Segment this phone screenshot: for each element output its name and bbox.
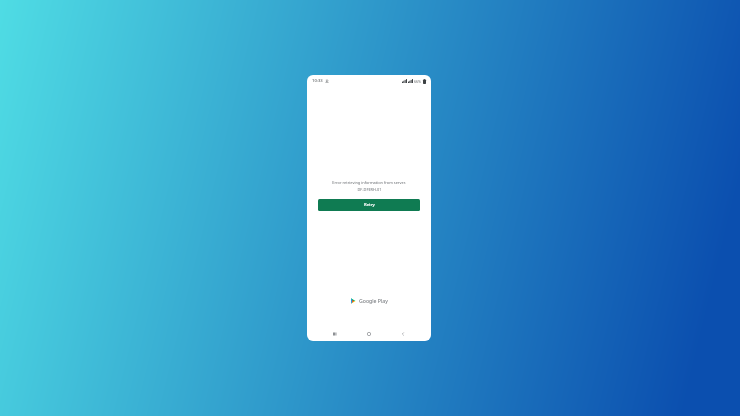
staticText: 10:33 xyxy=(312,78,323,84)
staticText: Error retrieving information from server… xyxy=(332,180,406,185)
staticText: Retry xyxy=(364,202,375,208)
button[interactable]: Retry xyxy=(318,199,420,211)
staticText: DF-DFERH-01 xyxy=(357,187,382,192)
button[interactable]: Back xyxy=(397,328,409,340)
button[interactable]: Home xyxy=(363,328,375,340)
staticText: 66% xyxy=(414,79,422,84)
staticText: Google Play xyxy=(359,297,388,304)
button[interactable]: Recent apps xyxy=(329,328,341,340)
